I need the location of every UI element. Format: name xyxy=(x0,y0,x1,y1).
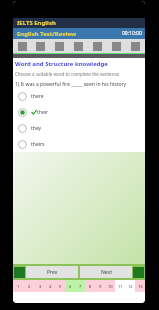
button[interactable] xyxy=(126,39,145,53)
button[interactable]: Prev xyxy=(26,266,78,278)
button[interactable]: 13 xyxy=(135,280,145,292)
button[interactable]: 4 xyxy=(45,280,55,292)
staticText: 1) It was a powerful fire _____ seen in … xyxy=(15,81,127,88)
button[interactable]: 5 xyxy=(55,280,65,292)
button[interactable] xyxy=(69,39,88,53)
button[interactable]: 10 xyxy=(105,280,115,292)
button[interactable] xyxy=(88,39,107,53)
button[interactable]: there xyxy=(13,88,145,104)
staticText: 4 xyxy=(49,284,52,289)
button[interactable]: theirs xyxy=(13,136,145,152)
button[interactable]: 6 xyxy=(65,280,75,292)
staticText: 12 xyxy=(128,284,133,289)
staticText: theirs xyxy=(31,141,45,148)
staticText: IELTS English xyxy=(17,19,56,27)
staticText: there xyxy=(31,93,44,100)
button[interactable]: their xyxy=(13,104,145,120)
staticText: 9 xyxy=(99,284,102,289)
button[interactable] xyxy=(31,39,50,53)
button[interactable] xyxy=(50,39,69,53)
button[interactable]: 7 xyxy=(75,280,85,292)
staticText: 10 xyxy=(108,284,113,289)
staticText: 5 xyxy=(59,284,62,289)
button[interactable]: 11 xyxy=(115,280,125,292)
button[interactable]: 12 xyxy=(125,280,135,292)
staticText: 8 xyxy=(89,284,92,289)
button[interactable]: Next xyxy=(80,266,132,278)
staticText: 1 xyxy=(17,284,20,289)
button[interactable]: 8 xyxy=(85,280,95,292)
staticText: 2 xyxy=(28,284,31,289)
staticText: Word and Structure knowledge xyxy=(15,60,108,68)
staticText: 11 xyxy=(118,284,123,289)
staticText: English Test/Review xyxy=(17,30,77,38)
button[interactable]: 9 xyxy=(95,280,105,292)
button[interactable] xyxy=(13,39,31,53)
staticText: 7 xyxy=(79,284,82,289)
button[interactable]: 2 xyxy=(24,280,35,292)
staticText: 3 xyxy=(39,284,42,289)
staticText: 6 xyxy=(69,284,72,289)
staticText: 00:10:00 xyxy=(122,30,142,37)
staticText: their xyxy=(37,109,49,116)
button[interactable]: 1 xyxy=(13,280,24,292)
staticText: Next xyxy=(101,269,112,276)
staticText: Choose a suitable word to complete the s… xyxy=(15,71,120,77)
button[interactable] xyxy=(107,39,126,53)
button[interactable]: 3 xyxy=(35,280,45,292)
staticText: they xyxy=(31,125,42,132)
staticText: 13 xyxy=(138,284,143,289)
button[interactable]: they xyxy=(13,120,145,136)
staticText: Prev xyxy=(47,269,58,276)
